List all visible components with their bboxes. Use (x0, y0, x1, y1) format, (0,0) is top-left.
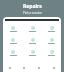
button[interactable] (3, 37, 23, 45)
button[interactable] (42, 49, 61, 57)
button[interactable]: Nav 2 (31, 63, 46, 72)
staticText: Pick a service (23, 11, 42, 15)
button[interactable] (23, 37, 42, 45)
button[interactable]: Nav 3 (46, 63, 61, 72)
button[interactable] (3, 25, 23, 33)
button[interactable] (23, 49, 42, 57)
button[interactable]: Nav 0 (3, 63, 17, 72)
button[interactable] (23, 25, 42, 33)
button[interactable] (42, 37, 61, 45)
staticText: Repairs (23, 3, 42, 10)
button[interactable] (3, 49, 23, 57)
button[interactable] (42, 25, 61, 33)
button[interactable]: Nav 1 (17, 63, 31, 72)
